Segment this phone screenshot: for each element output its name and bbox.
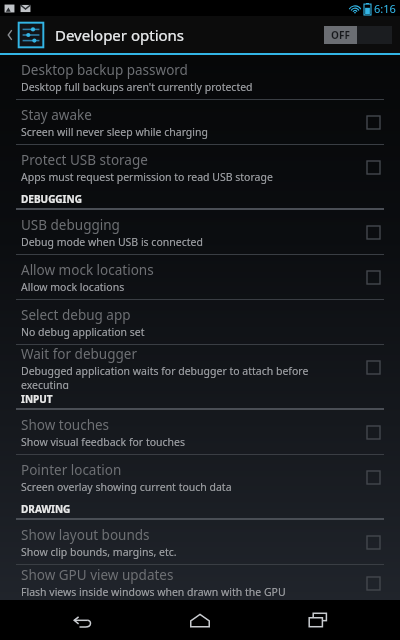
button[interactable]: Wait for debugger xyxy=(0,345,400,389)
button[interactable]: Recent apps xyxy=(283,600,353,640)
staticText: Show layout bounds xyxy=(21,526,150,544)
button[interactable]: Pointer location xyxy=(0,455,400,499)
staticText: Wait for debugger xyxy=(21,345,137,363)
staticText: Stay awake xyxy=(21,106,92,124)
staticText: Select debug app xyxy=(21,306,131,324)
button[interactable]: Show touches xyxy=(0,410,400,454)
staticText: Protect USB storage xyxy=(21,151,148,169)
button[interactable]: Back xyxy=(48,600,118,640)
staticText: Desktop backup password xyxy=(21,61,188,79)
staticText: Allow mock locations xyxy=(21,261,154,279)
staticText: Screen overlay showing current touch dat… xyxy=(21,480,232,494)
button[interactable]: OFF xyxy=(324,26,392,44)
button[interactable]: Show layout bounds xyxy=(0,520,400,564)
button[interactable]: Show GPU view updates xyxy=(0,565,400,600)
staticText: Debugged application waits for debugger … xyxy=(21,364,358,389)
staticText: Show touches xyxy=(21,416,110,434)
staticText: Debug mode when USB is connected xyxy=(21,235,203,249)
staticText: Developer options xyxy=(55,25,185,45)
button[interactable]: Desktop backup password xyxy=(0,55,400,99)
staticText: Flash views inside windows when drawn wi… xyxy=(21,585,286,599)
button[interactable]: Allow mock locations xyxy=(0,255,400,299)
button[interactable]: Select debug app xyxy=(0,300,400,344)
staticText: No debug application set xyxy=(21,325,145,339)
staticText: Pointer location xyxy=(21,461,122,479)
button[interactable]: USB debugging xyxy=(0,210,400,254)
button[interactable]: Home xyxy=(165,600,235,640)
staticText: DRAWING xyxy=(21,502,71,516)
staticText: OFF xyxy=(331,28,350,42)
staticText: Allow mock locations xyxy=(21,280,125,294)
staticText: Show GPU view updates xyxy=(21,566,174,584)
staticText: DEBUGGING xyxy=(21,192,82,206)
staticText: INPUT xyxy=(21,392,53,406)
staticText: Show clip bounds, margins, etc. xyxy=(21,545,177,559)
button[interactable]: Protect USB storage xyxy=(0,145,400,189)
button[interactable]: Navigate up xyxy=(0,21,49,49)
staticText: Apps must request permission to read USB… xyxy=(21,170,273,184)
staticText: Desktop full backups aren't currently pr… xyxy=(21,80,253,94)
staticText: USB debugging xyxy=(21,216,120,234)
staticText: Screen will never sleep while charging xyxy=(21,125,208,139)
button[interactable]: Stay awake xyxy=(0,100,400,144)
staticText: 6:16 xyxy=(374,1,396,16)
staticText: Show visual feedback for touches xyxy=(21,435,186,449)
